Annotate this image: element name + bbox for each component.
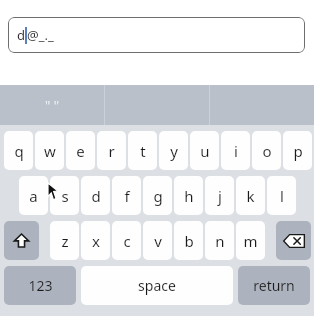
button[interactable]: s [50,176,79,215]
staticText: h [184,186,194,206]
staticText: v [154,231,162,251]
button[interactable]: z [50,221,79,260]
button[interactable]: 123 [4,266,76,305]
button[interactable]: b [174,221,203,260]
button[interactable]: u [190,131,219,170]
staticText: p [293,141,303,161]
staticText: k [246,186,255,206]
button[interactable]: space [81,266,233,305]
staticText: e [76,141,85,161]
button[interactable]: q [4,131,33,170]
staticText: s [61,186,69,206]
button[interactable]: return [238,266,310,305]
button[interactable]: i [221,131,250,170]
staticText: " " [45,96,59,114]
button[interactable]: w [35,131,64,170]
staticText: l [280,186,284,206]
button[interactable]: n [205,221,234,260]
staticText: n [215,231,225,251]
staticText: z [61,231,69,251]
staticText: g [153,186,163,206]
button[interactable]: e [66,131,95,170]
button[interactable]: d [81,176,110,215]
button[interactable]: a [19,176,48,215]
staticText: @_._ [27,26,54,44]
button[interactable]: Shift [4,221,39,260]
button[interactable]: y [159,131,188,170]
button[interactable]: d [8,17,305,53]
staticText: return [253,276,295,295]
button[interactable]: Backspace [276,221,311,260]
button[interactable]: k [236,176,265,215]
button[interactable]: g [143,176,172,215]
button[interactable]: j [205,176,234,215]
staticText: y [170,141,178,161]
button[interactable]: x [81,221,110,260]
staticText: i [234,141,238,161]
staticText: f [124,186,130,206]
button[interactable]: o [252,131,281,170]
staticText: x [92,231,100,251]
button[interactable]: f [112,176,141,215]
staticText: d [91,186,101,206]
staticText: r [108,141,115,161]
staticText: u [200,141,210,161]
staticText: c [123,231,131,251]
staticText: t [140,141,146,161]
staticText: 123 [28,276,53,295]
button[interactable]: l [267,176,296,215]
staticText: b [184,231,194,251]
button[interactable]: p [283,131,312,170]
staticText: a [29,186,38,206]
button[interactable]: v [143,221,172,260]
staticText: m [243,231,258,251]
button[interactable]: m [236,221,265,260]
button[interactable]: c [112,221,141,260]
staticText: j [218,186,222,206]
staticText: q [14,141,24,161]
button[interactable]: h [174,176,203,215]
staticText: o [262,141,272,161]
button[interactable]: r [97,131,126,170]
staticText: space [138,276,176,295]
button[interactable]: t [128,131,157,170]
staticText: d [17,26,25,44]
staticText: w [44,141,56,161]
